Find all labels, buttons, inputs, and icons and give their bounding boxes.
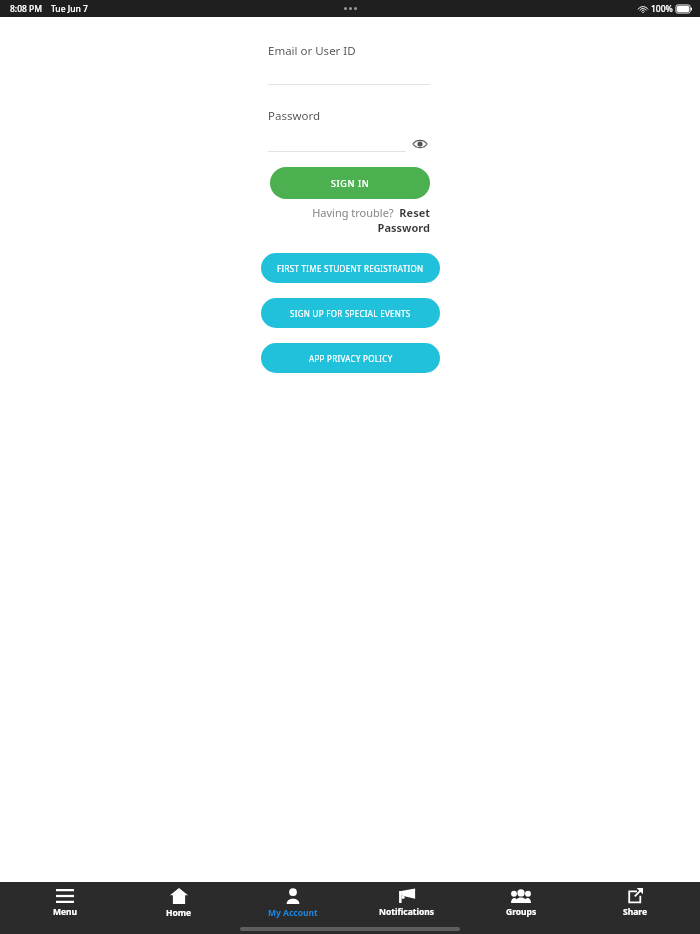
staticText: 100% — [651, 3, 673, 15]
staticText: 8:08 PM — [10, 3, 43, 15]
button[interactable]: Groups — [472, 882, 570, 924]
button[interactable]: Having trouble? Reset Password — [270, 205, 430, 235]
staticText: Email or User ID — [268, 43, 356, 59]
staticText: SIGN UP FOR SPECIAL EVENTS — [290, 308, 411, 319]
staticText: Password — [268, 108, 321, 124]
staticText: SIGN IN — [331, 177, 370, 189]
button[interactable]: Menu — [16, 882, 114, 924]
staticText: My Account — [268, 907, 318, 919]
staticText: APP PRIVACY POLICY — [309, 353, 393, 364]
button[interactable]: Notifications — [358, 882, 456, 924]
button[interactable]: My Account — [244, 882, 342, 924]
button[interactable] — [268, 137, 406, 152]
button[interactable]: SIGN IN — [270, 167, 430, 199]
staticText: Tue Jun 7 — [51, 3, 88, 15]
button[interactable]: Share — [586, 882, 684, 924]
button[interactable]: FIRST TIME STUDENT REGISTRATION — [261, 253, 440, 283]
staticText: Menu — [53, 906, 78, 918]
staticText: Notifications — [379, 906, 435, 918]
staticText: FIRST TIME STUDENT REGISTRATION — [277, 263, 424, 274]
staticText: Groups — [506, 906, 537, 918]
button[interactable]: Home — [130, 882, 228, 924]
staticText: Share — [623, 906, 648, 918]
button[interactable]: Show password — [410, 134, 430, 154]
staticText: Home — [166, 907, 192, 919]
staticText: Having trouble? Reset Password — [270, 205, 430, 235]
button[interactable]: APP PRIVACY POLICY — [261, 343, 440, 373]
button[interactable]: SIGN UP FOR SPECIAL EVENTS — [261, 298, 440, 328]
